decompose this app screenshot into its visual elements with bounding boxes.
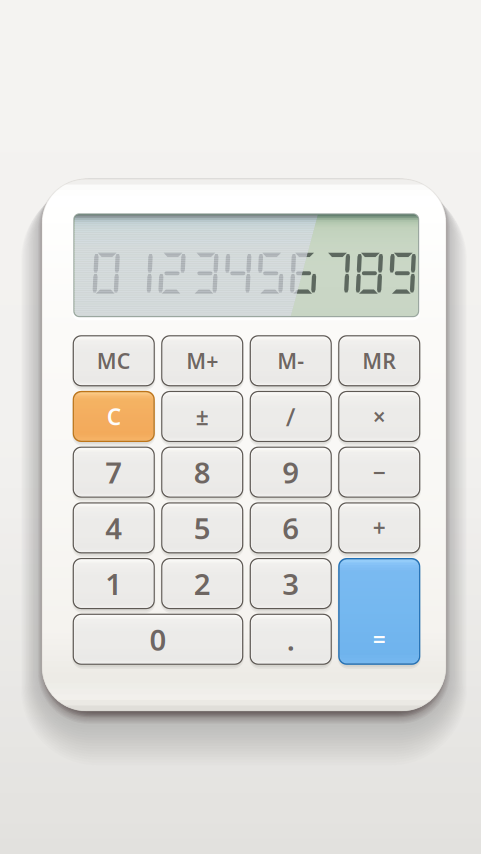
button[interactable]: MR	[336, 333, 422, 388]
staticText: MR	[362, 347, 396, 375]
button[interactable]: 1	[70, 556, 157, 611]
staticText: 7	[105, 453, 122, 492]
staticText: +	[373, 513, 386, 543]
button[interactable]: /	[247, 389, 334, 444]
button[interactable]: C	[70, 389, 157, 444]
staticText: 1	[105, 564, 122, 603]
button[interactable]: 7	[70, 444, 157, 500]
staticText: .	[287, 620, 295, 659]
button[interactable]: ±	[159, 389, 245, 444]
staticText: ±	[196, 401, 209, 431]
button[interactable]: 0	[70, 611, 245, 667]
button[interactable]: MC	[70, 333, 157, 388]
staticText: C	[107, 401, 121, 431]
button[interactable]: +	[336, 500, 422, 556]
button[interactable]: 4	[70, 500, 157, 556]
staticText: 8	[194, 453, 211, 492]
staticText: M-	[277, 347, 304, 375]
staticText: 3	[282, 564, 299, 603]
button[interactable]: −	[336, 444, 422, 500]
staticText: =	[373, 624, 386, 654]
staticText: M+	[186, 347, 218, 375]
staticText: 0	[149, 620, 166, 659]
staticText: 9	[282, 453, 299, 492]
button[interactable]: ×	[336, 389, 422, 444]
button[interactable]: 2	[159, 556, 245, 611]
button[interactable]: 9	[247, 444, 334, 500]
button[interactable]: =	[336, 556, 422, 667]
button[interactable]: 3	[247, 556, 334, 611]
staticText: ×	[373, 401, 386, 431]
staticText: 6	[282, 508, 299, 547]
button[interactable]: 5	[159, 500, 245, 556]
staticText: /	[286, 400, 296, 433]
button[interactable]: 8	[159, 444, 245, 500]
staticText: 4	[105, 508, 122, 547]
button[interactable]: .	[247, 611, 334, 667]
button[interactable]: 6	[247, 500, 334, 556]
staticText: −	[373, 457, 386, 487]
staticText: 5	[194, 508, 211, 547]
staticText: 2	[194, 564, 211, 603]
button[interactable]: M+	[159, 333, 245, 388]
staticText: MC	[97, 347, 131, 375]
button[interactable]: M-	[247, 333, 334, 388]
